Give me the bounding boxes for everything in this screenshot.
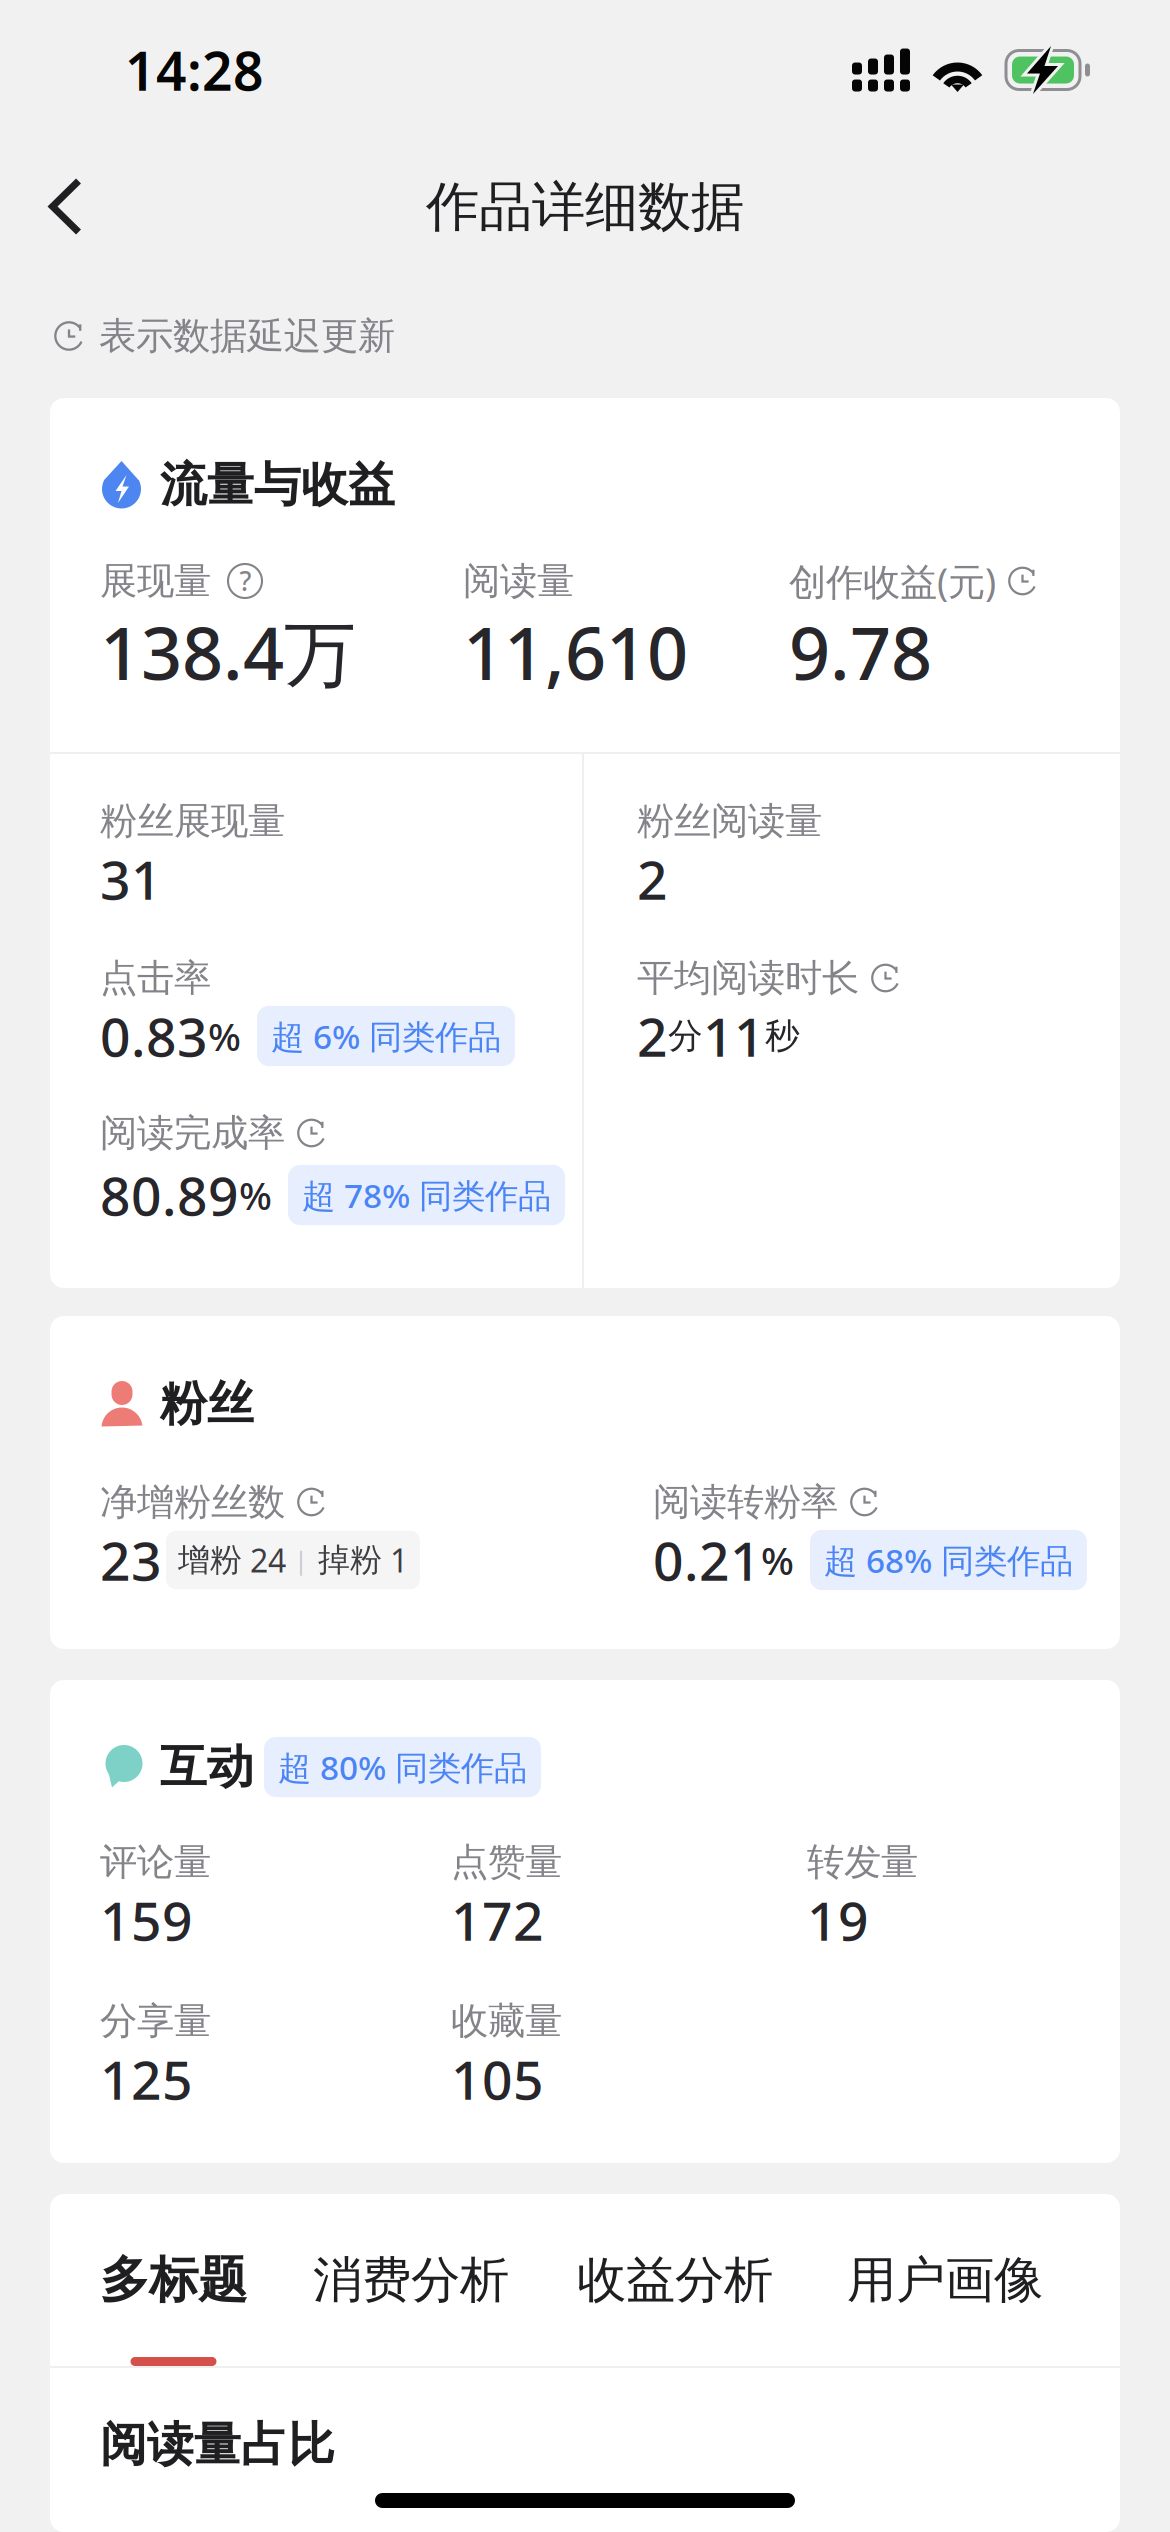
staticText: 秒: [765, 1015, 800, 1057]
staticText: 粉丝阅读量: [637, 798, 822, 844]
staticText: 2: [637, 844, 668, 914]
staticText: 分: [668, 1015, 703, 1057]
staticText: 点击率: [100, 955, 211, 1001]
staticText: 收藏量: [451, 1998, 562, 2044]
staticText: %: [239, 1169, 272, 1221]
button[interactable]: 返回: [20, 153, 111, 260]
staticText: %: [208, 1010, 241, 1062]
staticText: 多标题: [100, 2250, 247, 2310]
staticText: 11,610: [463, 604, 688, 700]
button[interactable]: 用户画像: [847, 2255, 1043, 2366]
staticText: 作品详细数据: [426, 174, 744, 240]
staticText: 分享量: [100, 1998, 211, 2044]
staticText: 11: [703, 1001, 765, 1071]
staticText: 评论量: [100, 1839, 211, 1885]
staticText: 23: [100, 1525, 162, 1595]
staticText: 0.83: [100, 1001, 208, 1071]
staticText: 19: [807, 1885, 869, 1955]
staticText: 净增粉丝数: [100, 1479, 285, 1525]
staticText: 增粉: [178, 1540, 242, 1580]
staticText: 点赞量: [451, 1839, 562, 1885]
staticText: 14:28: [125, 35, 264, 105]
staticText: 9.78: [789, 604, 932, 700]
staticText: 阅读量占比: [100, 2416, 335, 2473]
staticText: 流量与收益: [160, 456, 395, 514]
staticText: 31: [100, 844, 162, 914]
button[interactable]: 多标题: [100, 2255, 247, 2366]
staticText: 转发量: [807, 1839, 918, 1885]
staticText: %: [761, 1534, 794, 1586]
staticText: 超 6% 同类作品: [271, 1014, 501, 1058]
staticText: 消费分析: [313, 2250, 509, 2310]
staticText: 表示数据延迟更新: [99, 313, 395, 359]
staticText: 超 78% 同类作品: [302, 1173, 551, 1217]
staticText: 172: [451, 1885, 544, 1955]
staticText: 159: [100, 1885, 193, 1955]
staticText: ?: [239, 563, 251, 598]
staticText: 24: [242, 1539, 294, 1581]
staticText: 105: [451, 2044, 544, 2114]
staticText: 创作收益(元): [789, 556, 996, 606]
button[interactable]: 消费分析: [313, 2255, 509, 2366]
staticText: 用户画像: [847, 2250, 1043, 2310]
staticText: 0.21: [653, 1525, 761, 1595]
staticText: 粉丝: [160, 1375, 254, 1433]
staticText: 阅读完成率: [100, 1110, 285, 1156]
staticText: 平均阅读时长: [637, 955, 859, 1001]
staticText: 1: [382, 1539, 408, 1581]
staticText: 2: [637, 1001, 668, 1071]
staticText: 超 80% 同类作品: [278, 1745, 527, 1789]
button[interactable]: 收益分析: [577, 2255, 773, 2366]
staticText: 互动: [160, 1738, 254, 1796]
staticText: 138.4万: [100, 604, 356, 700]
staticText: 80.89: [100, 1160, 239, 1230]
staticText: 展现量: [100, 558, 211, 604]
staticText: 粉丝展现量: [100, 798, 285, 844]
staticText: |: [294, 1543, 308, 1577]
staticText: 125: [100, 2044, 193, 2114]
staticText: 超 68% 同类作品: [824, 1538, 1073, 1582]
staticText: 掉粉: [308, 1540, 382, 1580]
staticText: 阅读转粉率: [653, 1479, 838, 1525]
staticText: 阅读量: [463, 558, 574, 604]
staticText: 收益分析: [577, 2250, 773, 2310]
